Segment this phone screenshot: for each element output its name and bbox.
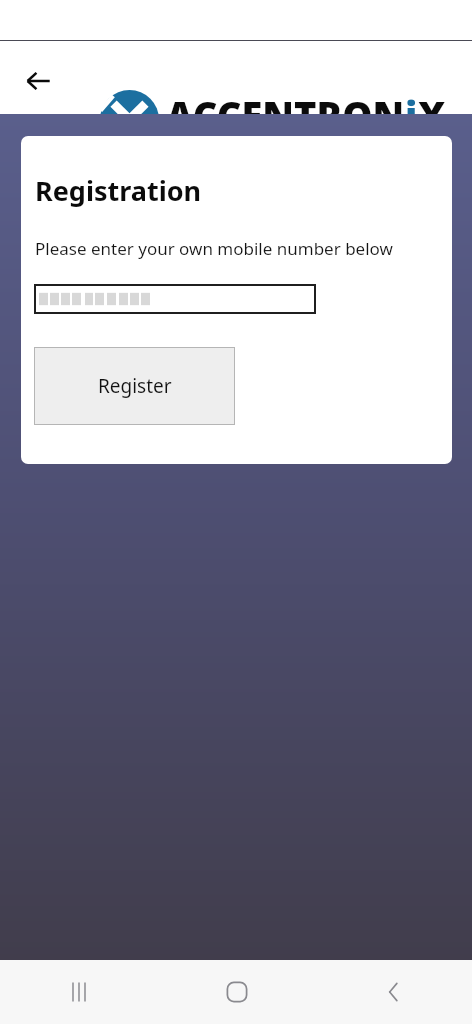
staticText: X <box>418 89 446 141</box>
staticText: Register <box>98 373 172 399</box>
button[interactable]: Back <box>315 960 472 1024</box>
button[interactable]: Home <box>158 960 315 1024</box>
staticText: Please enter your own mobile number belo… <box>35 237 393 260</box>
button[interactable] <box>34 284 316 314</box>
staticText: YOU IMAGINE WE CREATE <box>256 133 446 153</box>
button[interactable]: Back <box>14 57 62 105</box>
staticText: i <box>405 89 418 141</box>
staticText: Registration <box>35 172 202 209</box>
button[interactable]: Register <box>34 347 235 425</box>
staticText: ACCENTRON <box>166 89 405 141</box>
button[interactable]: Recent apps <box>0 960 158 1024</box>
